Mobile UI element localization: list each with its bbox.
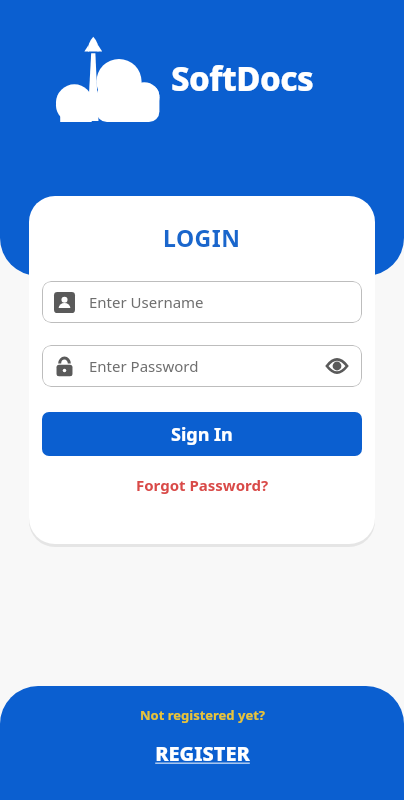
staticText: Forgot Password?: [136, 475, 269, 495]
staticText: LOGIN: [163, 222, 241, 253]
button[interactable]: Sign In: [42, 412, 362, 456]
staticText: SoftDocs: [171, 56, 314, 101]
staticText: Enter Password: [89, 356, 199, 376]
staticText: Enter Username: [89, 292, 204, 312]
button[interactable]: Forgot Password?: [128, 472, 277, 498]
staticText: Sign In: [171, 422, 233, 447]
staticText: Not registered yet?: [140, 706, 265, 724]
button[interactable]: Show password: [324, 353, 350, 379]
staticText: REGISTER: [155, 740, 250, 767]
button[interactable]: Enter Password: [42, 345, 362, 387]
button[interactable]: REGISTER: [145, 738, 260, 769]
button[interactable]: Enter Username: [42, 281, 362, 323]
